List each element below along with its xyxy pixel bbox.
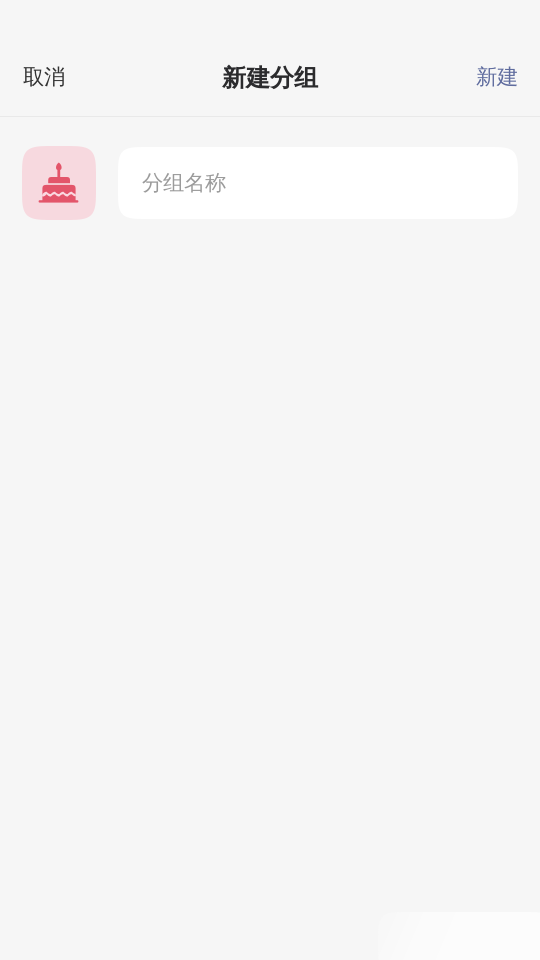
staticText: 新建分组 [222,63,318,93]
button[interactable]: 取消 [0,45,85,109]
button[interactable]: 选择图标 [22,146,96,220]
button[interactable]: 分组名称 [118,147,518,219]
staticText: 取消 [23,64,65,90]
button[interactable]: 新建 [456,45,540,109]
staticText: 分组名称 [142,170,226,196]
staticText: 新建 [476,64,518,90]
